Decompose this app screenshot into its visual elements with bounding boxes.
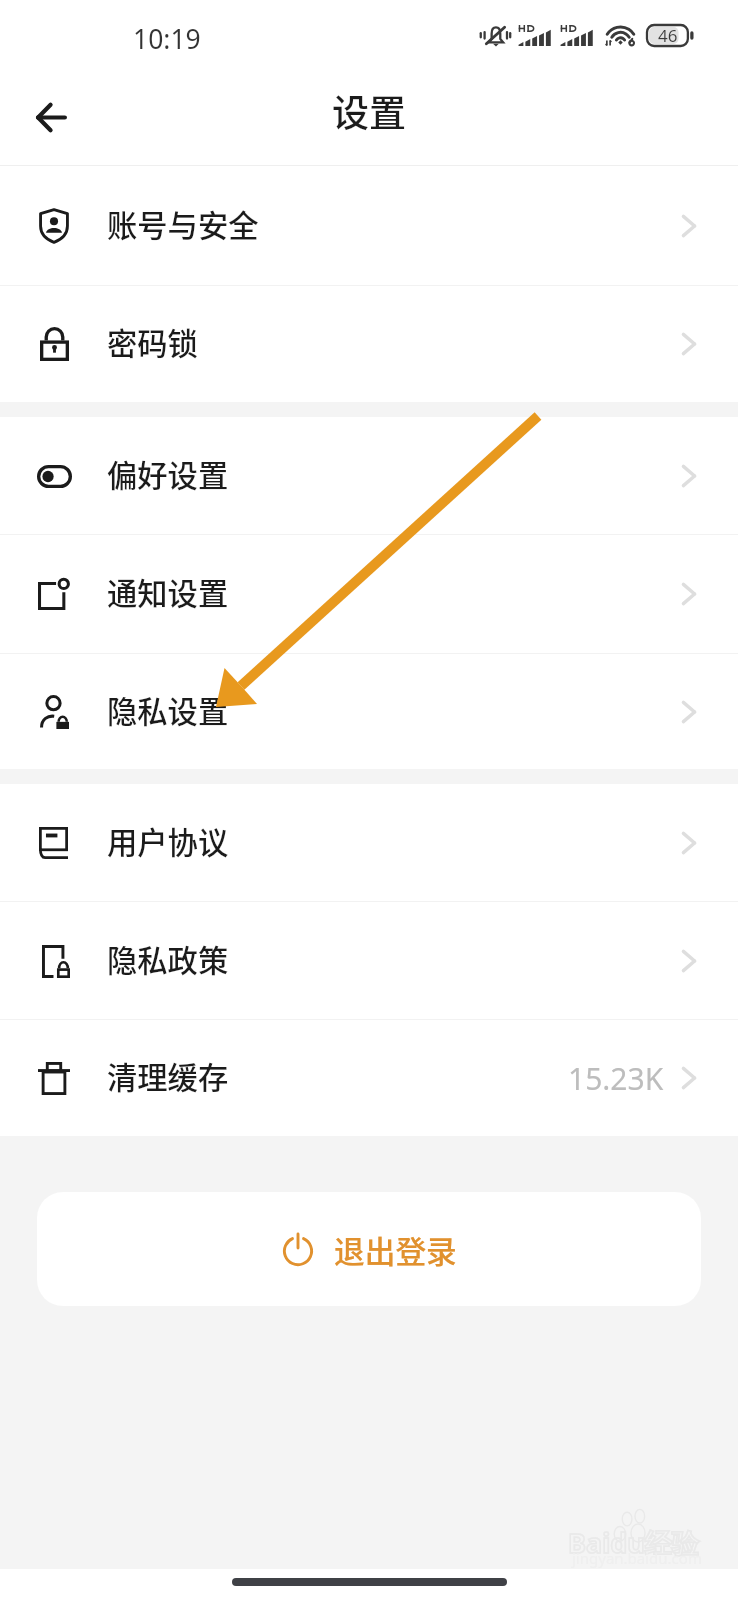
- button[interactable]: 隐私设置: [0, 654, 738, 769]
- staticText: 46: [658, 24, 678, 45]
- staticText: 15.23K: [568, 1058, 664, 1099]
- button[interactable]: 密码锁: [0, 286, 738, 402]
- button[interactable]: 用户协议: [0, 784, 738, 901]
- button[interactable]: 账号与安全: [0, 166, 738, 285]
- staticText: Baidu经验: [568, 1524, 699, 1561]
- button[interactable]: 隐私政策: [0, 902, 738, 1019]
- staticText: 隐私政策: [107, 937, 229, 981]
- staticText: 偏好设置: [107, 452, 229, 496]
- staticText: jingyan.baidu.com: [572, 1548, 702, 1568]
- staticText: 10:19: [133, 21, 201, 57]
- button[interactable]: 退出登录: [37, 1192, 701, 1306]
- staticText: 账号与安全: [107, 202, 259, 246]
- staticText: 清理缓存: [107, 1054, 229, 1098]
- button[interactable]: 通知设置: [0, 535, 738, 653]
- button[interactable]: Back: [16, 84, 86, 154]
- button[interactable]: 清理缓存: [0, 1020, 738, 1136]
- staticText: 密码锁: [107, 320, 198, 364]
- staticText: 设置: [332, 84, 406, 138]
- button[interactable]: 偏好设置: [0, 417, 738, 534]
- staticText: 退出登录: [334, 1227, 457, 1271]
- staticText: 通知设置: [107, 570, 229, 614]
- staticText: 用户协议: [107, 819, 229, 863]
- staticText: 隐私设置: [107, 688, 229, 732]
